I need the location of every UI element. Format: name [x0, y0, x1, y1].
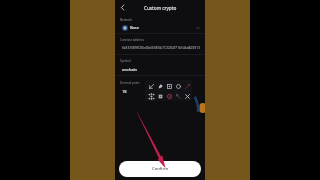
- staticText: Symbol: [120, 59, 131, 63]
- button[interactable]: Back: [118, 3, 127, 12]
- button[interactable]: Circle outline: [174, 82, 182, 90]
- button[interactable]: Base: [122, 23, 200, 32]
- button[interactable]: Arrow tool: [147, 82, 155, 90]
- button[interactable]: Highlighter: [156, 82, 164, 90]
- staticText: Confirm: [152, 166, 169, 172]
- button[interactable]: Colour: [165, 92, 173, 100]
- staticText: onchain: [122, 67, 138, 72]
- staticText: 0x833589fCD6eDb6E08f4c7C32D4f71b54bdA029…: [122, 46, 201, 50]
- staticText: Custom crypto: [144, 5, 177, 11]
- button[interactable]: Confirm: [119, 161, 201, 177]
- staticText: Contract address: [120, 38, 144, 42]
- staticText: Decimal point: [120, 81, 140, 85]
- button[interactable]: Undo: [174, 92, 182, 100]
- staticText: Base: [130, 25, 140, 30]
- button[interactable]: Blur: [147, 92, 155, 100]
- button[interactable]: Close: [183, 92, 191, 100]
- staticText: Network: [120, 18, 133, 22]
- staticText: 18: [122, 89, 127, 94]
- button[interactable]: Filled rectangle: [156, 92, 164, 100]
- button[interactable]: Rectangle outline: [165, 82, 173, 90]
- button[interactable]: Redo: [183, 82, 191, 90]
